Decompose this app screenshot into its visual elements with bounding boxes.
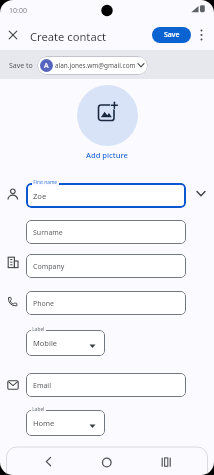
- staticText: Home: [33, 418, 55, 428]
- staticText: A: [44, 61, 49, 71]
- staticText: 10:00: [9, 6, 27, 16]
- button[interactable]: A: [37, 56, 148, 75]
- staticText: Label: [31, 326, 46, 333]
- button[interactable]: [5, 26, 23, 44]
- staticText: First name: [32, 179, 59, 186]
- staticText: Save: [164, 30, 180, 40]
- staticText: Phone: [33, 299, 55, 309]
- staticText: Mobile: [33, 338, 58, 348]
- button[interactable]: [196, 27, 208, 43]
- button[interactable]: [38, 451, 59, 471]
- button[interactable]: [26, 220, 186, 244]
- button[interactable]: [96, 451, 117, 471]
- button[interactable]: [77, 85, 138, 146]
- staticText: Zoe: [33, 191, 47, 201]
- staticText: Save to: [9, 61, 33, 71]
- button[interactable]: Save: [152, 27, 191, 43]
- staticText: Create contact: [30, 29, 107, 44]
- button[interactable]: [26, 254, 186, 278]
- button[interactable]: [26, 410, 105, 436]
- button[interactable]: [26, 183, 186, 208]
- staticText: alan.jones.wm@gmail.com: [55, 61, 136, 70]
- button[interactable]: [155, 451, 176, 471]
- button[interactable]: [26, 330, 105, 356]
- staticText: Label: [31, 406, 46, 413]
- staticText: Add picture: [86, 150, 128, 160]
- button[interactable]: Add picture: [80, 149, 134, 161]
- button[interactable]: [26, 373, 186, 397]
- staticText: Surname: [33, 228, 63, 238]
- staticText: Email: [33, 381, 51, 391]
- button[interactable]: [26, 291, 186, 315]
- staticText: Company: [33, 262, 65, 272]
